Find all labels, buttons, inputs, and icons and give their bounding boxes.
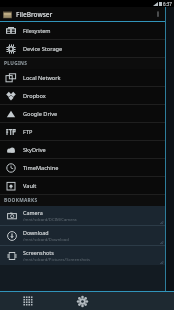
button[interactable]: SkyDrive [0,141,165,158]
staticText: Device Storage [23,45,63,53]
staticText: Google Drive [23,110,58,118]
button[interactable]: Screenshots [0,246,165,265]
staticText: /mnt/sdcard/Download [23,237,69,243]
staticText: /mnt/sdcard/DCIM/Camera [23,217,77,223]
staticText: PLUGINS [4,60,28,67]
button[interactable]: Camera [0,206,165,225]
staticText: TimeMachine [23,164,59,172]
button[interactable]: Local Network [0,69,165,86]
staticText: SkyDrive [23,146,46,154]
staticText: Screenshots [23,249,54,256]
staticText: Filesystem [23,27,51,35]
staticText: Vault [23,182,37,190]
button[interactable]: Filesystem [0,22,165,39]
button[interactable]: Google Drive [0,105,165,122]
staticText: Download [23,229,49,236]
button[interactable]: Device Storage [0,40,165,57]
staticText: FileBrowser [16,10,151,19]
button[interactable]: Vault [0,177,165,194]
button[interactable]: Settings [55,292,109,310]
button[interactable]: TimeMachine [0,159,165,176]
staticText: 6:37 [163,1,172,7]
button[interactable]: FTP [0,123,165,140]
staticText: /mnt/sdcard/Pictures/Screenshots [23,257,91,263]
staticText: BOOKMARKS [4,197,38,204]
button[interactable]: Download [0,226,165,245]
staticText: Local Network [23,74,61,82]
button[interactable]: More options [151,7,165,21]
staticText: Dropbox [23,92,46,100]
staticText: Camera [23,209,43,216]
staticText: FTP [23,128,33,136]
button[interactable]: Grid view [0,292,55,310]
button[interactable]: Dropbox [0,87,165,104]
